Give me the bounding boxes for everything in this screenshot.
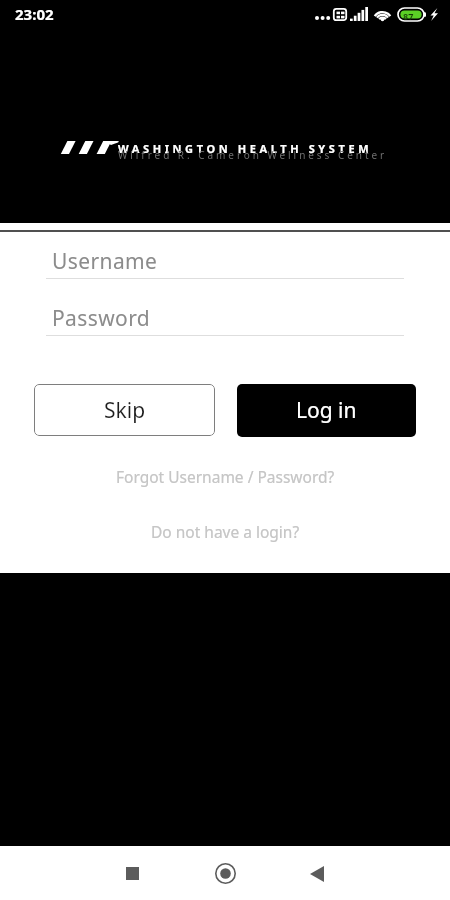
button[interactable]: Back [295, 852, 339, 896]
button[interactable]: Forgot Username / Password? [0, 462, 450, 490]
staticText: 87 [403, 10, 414, 22]
staticText: Password [52, 304, 151, 333]
staticText: Log in [296, 396, 357, 425]
button[interactable]: Username [46, 247, 404, 279]
staticText: Username [52, 247, 158, 276]
button[interactable]: Do not have a login? [0, 517, 450, 545]
staticText: 23:02 [15, 4, 54, 24]
button[interactable]: Home [203, 851, 247, 895]
button[interactable]: Log in [237, 384, 416, 437]
staticText: Do not have a login? [151, 521, 300, 542]
button[interactable]: Password [46, 304, 404, 336]
staticText: WASHINGTON HEALTH SYSTEM [118, 141, 373, 156]
button[interactable]: Skip [34, 384, 215, 436]
button[interactable]: Recent apps [110, 851, 154, 895]
staticText: Forgot Username / Password? [116, 466, 335, 487]
staticText: Wilfred R. Cameron Wellness Center [118, 148, 388, 162]
staticText: Skip [104, 396, 146, 425]
